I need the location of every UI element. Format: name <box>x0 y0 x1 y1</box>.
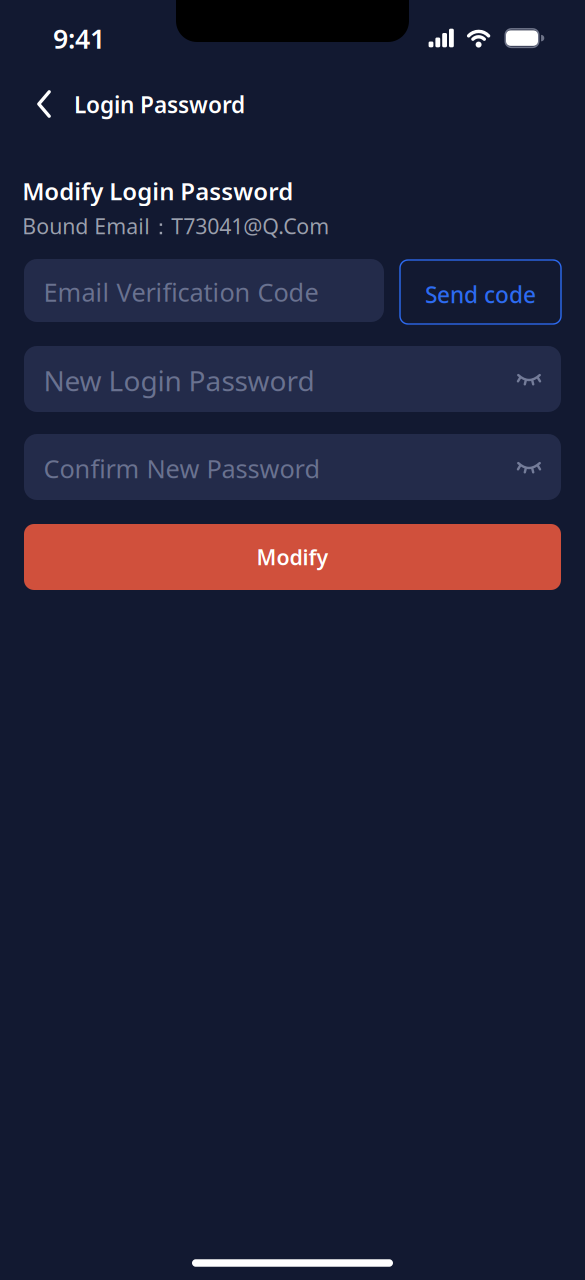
staticText: Modify Login Password <box>22 175 293 207</box>
button[interactable]: Show password <box>517 372 541 386</box>
staticText: Bound Email：T73041@Q.Com <box>22 212 329 240</box>
staticText: New Login Password <box>43 362 314 399</box>
button[interactable]: Back <box>37 90 51 118</box>
button[interactable]: Show password <box>517 460 541 474</box>
staticText: Email Verification Code <box>43 275 318 309</box>
staticText: Login Password <box>74 89 245 119</box>
staticText: 9:41 <box>53 21 105 56</box>
staticText: Send code <box>425 279 536 309</box>
staticText: Confirm New Password <box>43 452 320 485</box>
button[interactable]: Send code <box>400 260 561 324</box>
button[interactable]: Modify <box>24 524 561 590</box>
staticText: Modify <box>256 543 328 571</box>
